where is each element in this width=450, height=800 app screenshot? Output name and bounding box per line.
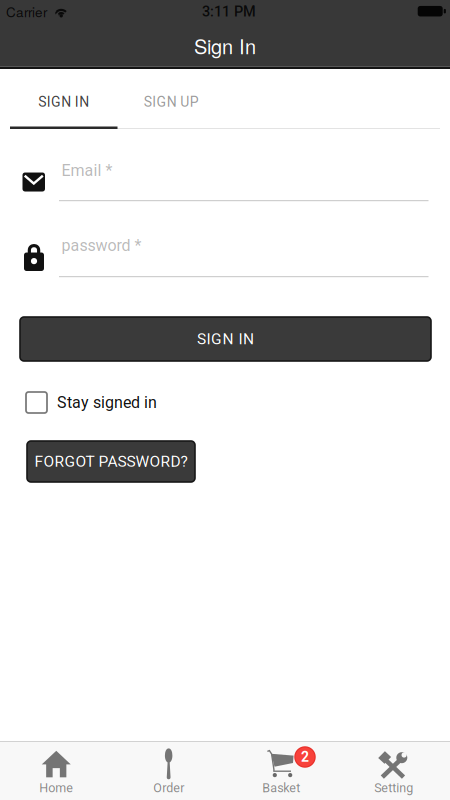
staticText: SIGN IN (38, 94, 89, 110)
staticText: Stay signed in (57, 393, 157, 412)
staticText: SIGN UP (144, 94, 199, 110)
staticText: password * (61, 236, 141, 255)
staticText: SIGN IN (197, 330, 254, 348)
staticText: FORGOT PASSWORD? (34, 452, 187, 471)
staticText: Setting (374, 781, 413, 795)
button[interactable]: Order (112, 742, 225, 800)
staticText: Basket (262, 781, 300, 795)
staticText: Order (153, 781, 184, 795)
button[interactable]: 2 (225, 742, 337, 800)
button[interactable]: SIGN IN (20, 317, 431, 361)
button[interactable]: SIGN IN (10, 81, 117, 123)
staticText: 3:11 PM (202, 3, 256, 20)
button[interactable]: Home (0, 742, 112, 800)
staticText: Sign In (194, 31, 256, 60)
staticText: Home (39, 781, 73, 795)
button[interactable]: FORGOT PASSWORD? (27, 441, 195, 482)
button[interactable]: Setting (337, 742, 450, 800)
staticText: Email * (61, 161, 112, 180)
button[interactable]: Stay signed in (26, 392, 171, 413)
staticText: 2 (301, 749, 309, 765)
staticText: Carrier (6, 2, 47, 21)
button[interactable]: SIGN UP (117, 81, 225, 123)
